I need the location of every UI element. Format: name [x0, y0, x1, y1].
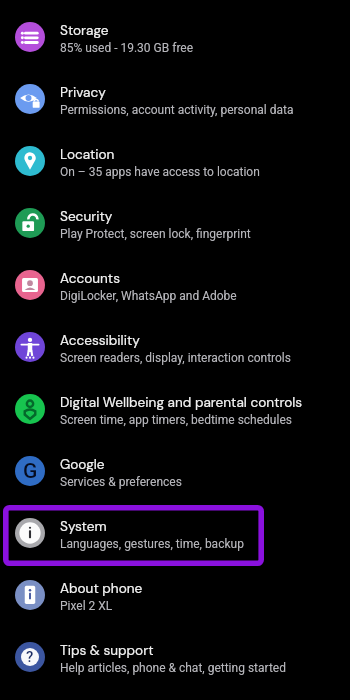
staticText: On – 35 apps have access to location: [60, 165, 260, 179]
staticText: Tips & support: [60, 642, 154, 660]
staticText: About phone: [60, 580, 143, 598]
staticText: G: [23, 459, 38, 484]
button[interactable]: About phone: [0, 564, 350, 626]
staticText: ?: [26, 648, 34, 666]
staticText: Location: [60, 146, 115, 164]
button[interactable]: Digital Wellbeing and parental controls: [0, 378, 350, 440]
staticText: Languages, gestures, time, backup: [60, 537, 244, 551]
staticText: Screen time, app timers, bedtime schedul…: [60, 413, 292, 427]
staticText: System: [60, 518, 107, 536]
button[interactable]: ?: [0, 626, 350, 688]
button[interactable]: Storage: [0, 6, 350, 68]
button[interactable]: Accounts: [0, 254, 350, 316]
staticText: Google: [60, 456, 105, 474]
button[interactable]: Accessibility: [0, 316, 350, 378]
staticText: Services & preferences: [60, 475, 182, 489]
button[interactable]: Privacy: [0, 68, 350, 130]
staticText: DigiLocker, WhatsApp and Adobe: [60, 289, 237, 303]
staticText: Accounts: [60, 270, 121, 288]
staticText: Privacy: [60, 84, 106, 102]
staticText: Screen readers, display, interaction con…: [60, 351, 291, 365]
staticText: Accessibility: [60, 332, 140, 350]
button[interactable]: Security: [0, 192, 350, 254]
staticText: Pixel 2 XL: [60, 599, 113, 613]
staticText: Help articles, phone & chat, getting sta…: [60, 661, 286, 675]
button[interactable]: G: [0, 440, 350, 502]
staticText: 85% used - 19.30 GB free: [60, 41, 194, 55]
staticText: Storage: [60, 22, 109, 40]
button[interactable]: System: [0, 502, 350, 564]
staticText: Play Protect, screen lock, fingerprint: [60, 227, 251, 241]
staticText: Security: [60, 208, 113, 226]
button[interactable]: Location: [0, 130, 350, 192]
staticText: Permissions, account activity, personal …: [60, 103, 294, 117]
staticText: Digital Wellbeing and parental controls: [60, 394, 303, 412]
